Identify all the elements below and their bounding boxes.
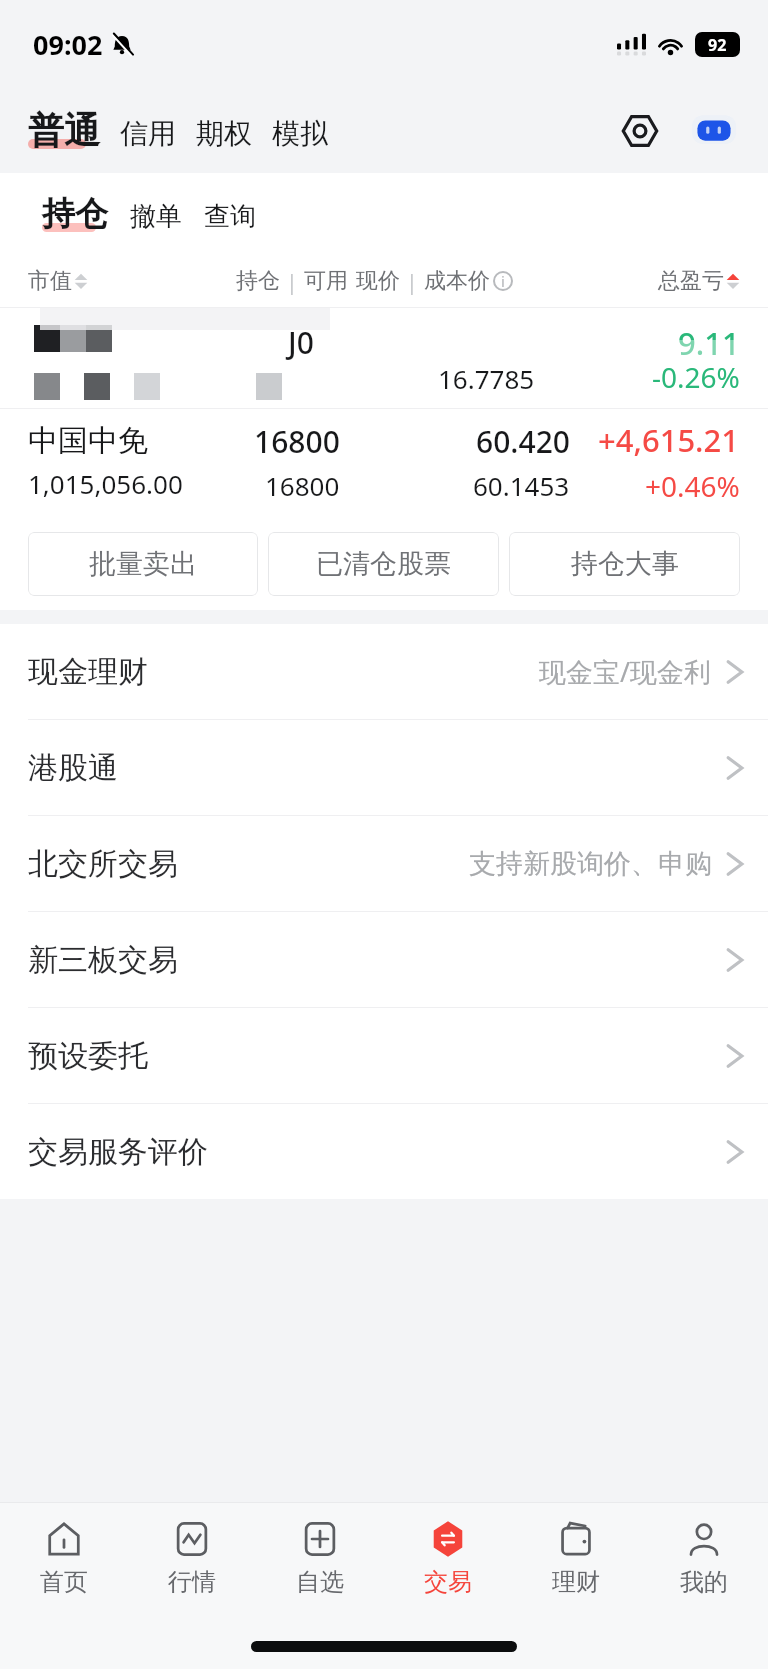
staticText: 现价 bbox=[356, 267, 400, 295]
staticText: 支持新股询价、申购 bbox=[469, 847, 712, 881]
staticText: 交易 bbox=[424, 1567, 472, 1597]
staticText: 自选 bbox=[296, 1567, 344, 1597]
staticText: 现金宝/现金利 bbox=[539, 653, 712, 690]
staticText: -0.26% bbox=[652, 358, 740, 396]
staticText: 期权 bbox=[196, 116, 252, 151]
button[interactable]: 期权 bbox=[196, 116, 252, 153]
staticText: 持仓 bbox=[236, 267, 280, 295]
staticText: 总盈亏 bbox=[658, 267, 724, 295]
staticText: 市值 bbox=[28, 267, 72, 295]
staticText: 北交所交易 bbox=[28, 845, 178, 883]
staticText: 16800 bbox=[254, 421, 340, 462]
staticText: 普通 bbox=[28, 108, 100, 153]
staticText: 行情 bbox=[168, 1567, 216, 1597]
button[interactable]: 我的 bbox=[640, 1503, 768, 1611]
button[interactable]: 行情 bbox=[128, 1503, 256, 1611]
staticText: | bbox=[280, 266, 304, 296]
staticText: 理财 bbox=[552, 1567, 600, 1597]
staticText: 我的 bbox=[680, 1567, 728, 1597]
button[interactable]: 模拟 bbox=[272, 116, 328, 153]
button[interactable]: 新三板交易 bbox=[0, 912, 768, 1007]
staticText: 批量卖出 bbox=[89, 547, 197, 581]
staticText: 持仓大事 bbox=[571, 547, 679, 581]
button[interactable]: 撤单 bbox=[130, 200, 182, 235]
staticText: 模拟 bbox=[272, 116, 328, 151]
button[interactable]: 北交所交易 bbox=[0, 816, 768, 911]
staticText: 16800 bbox=[265, 468, 340, 503]
staticText: 已清仓股票 bbox=[316, 547, 451, 581]
button[interactable]: 理财 bbox=[512, 1503, 640, 1611]
button[interactable]: 交易服务评价 bbox=[0, 1104, 768, 1199]
button[interactable]: 自选 bbox=[256, 1503, 384, 1611]
button[interactable]: 批量卖出 bbox=[28, 532, 258, 596]
button[interactable]: 港股通 bbox=[0, 720, 768, 815]
staticText: 港股通 bbox=[28, 749, 118, 787]
staticText: 新三板交易 bbox=[28, 941, 178, 979]
button[interactable]: 首页 bbox=[0, 1503, 128, 1611]
staticText: 预设委托 bbox=[28, 1037, 148, 1075]
staticText: 信用 bbox=[120, 116, 176, 151]
staticText: 成本价 bbox=[424, 267, 490, 295]
button[interactable]: 智能助手 bbox=[688, 105, 740, 157]
button[interactable]: 持仓 bbox=[42, 193, 108, 235]
staticText: 持仓 bbox=[42, 193, 108, 235]
staticText: 60.420 bbox=[476, 421, 570, 462]
staticText: 09:02 bbox=[33, 26, 103, 63]
staticText: | bbox=[400, 266, 424, 296]
button[interactable]: 9.11 bbox=[0, 308, 768, 408]
staticText: +0.46% bbox=[645, 467, 740, 505]
button[interactable]: 中国中免 bbox=[0, 409, 768, 514]
staticText: 查询 bbox=[204, 200, 256, 233]
staticText: 交易服务评价 bbox=[28, 1133, 208, 1171]
button[interactable]: 已清仓股票 bbox=[268, 532, 499, 596]
button[interactable]: 信用 bbox=[120, 116, 176, 153]
staticText: J0 bbox=[288, 322, 314, 363]
staticText: 可用 bbox=[304, 267, 348, 295]
staticText: 现金理财 bbox=[28, 653, 148, 691]
staticText: 中国中免 bbox=[28, 422, 148, 460]
button[interactable]: 预设委托 bbox=[0, 1008, 768, 1103]
button[interactable]: 查询 bbox=[204, 200, 256, 235]
button[interactable]: 持仓大事 bbox=[509, 532, 740, 596]
staticText: 首页 bbox=[40, 1567, 88, 1597]
button[interactable]: 设置 bbox=[614, 105, 666, 157]
staticText: 撤单 bbox=[130, 200, 182, 233]
staticText: 1,015,056.00 bbox=[28, 466, 183, 501]
staticText: 60.1453 bbox=[473, 468, 570, 503]
staticText: i bbox=[501, 271, 505, 291]
button[interactable]: 普通 bbox=[28, 108, 100, 153]
staticText: 16.7785 bbox=[438, 361, 535, 396]
staticText: +4,615.21 bbox=[598, 419, 740, 461]
button[interactable]: 交易 bbox=[384, 1503, 512, 1611]
button[interactable]: 现金理财 bbox=[0, 624, 768, 719]
staticText: 9.11 bbox=[678, 322, 740, 364]
staticText: 92 bbox=[708, 34, 727, 56]
